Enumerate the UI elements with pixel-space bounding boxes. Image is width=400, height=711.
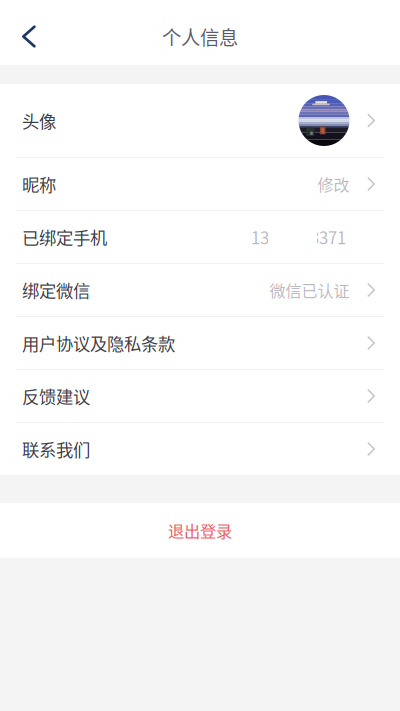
button[interactable]: 昵称	[0, 158, 400, 210]
button[interactable]: 绑定微信	[0, 264, 400, 316]
staticText: 联系我们	[22, 436, 90, 462]
staticText: 修改	[317, 172, 349, 196]
button[interactable]: 头像	[0, 84, 400, 157]
staticText: 昵称	[22, 171, 56, 197]
button[interactable]: 反馈建议	[0, 370, 400, 422]
button[interactable]: 联系我们	[0, 423, 400, 475]
staticText: 绑定微信	[22, 277, 90, 303]
staticText: 用户协议及隐私条款	[22, 330, 175, 356]
button[interactable]: 已绑定手机	[0, 211, 400, 263]
staticText: 微信已认证	[269, 278, 349, 302]
staticText: 137****3371	[251, 225, 346, 249]
button[interactable]: Back	[0, 14, 54, 58]
staticText: 退出登录	[168, 519, 232, 542]
button[interactable]: 退出登录	[0, 503, 400, 558]
staticText: 反馈建议	[22, 383, 90, 409]
staticText: 个人信息	[162, 22, 238, 50]
button[interactable]: 用户协议及隐私条款	[0, 317, 400, 369]
staticText: 已绑定手机	[22, 224, 107, 250]
staticText: 头像	[22, 108, 56, 133]
